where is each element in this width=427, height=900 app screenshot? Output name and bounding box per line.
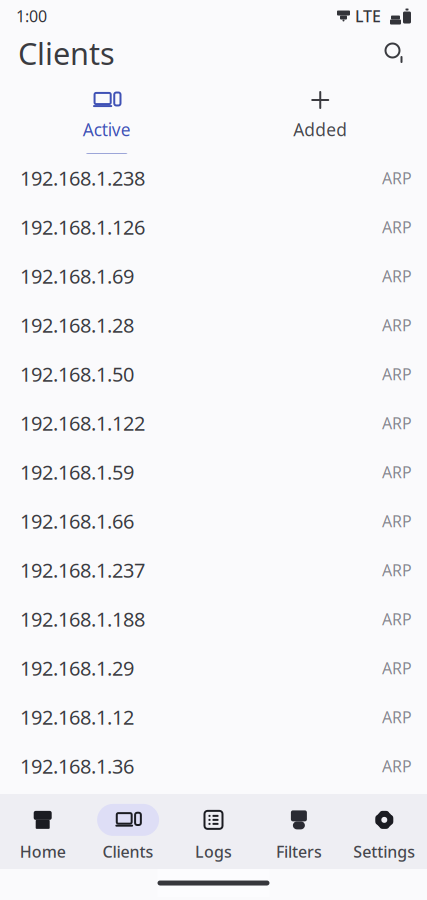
staticText: 192.168.1.59: [20, 459, 134, 485]
button[interactable]: Home: [0, 794, 85, 869]
staticText: 192.168.1.188: [20, 606, 145, 632]
staticText: ARP: [382, 167, 412, 189]
staticText: 192.168.1.50: [20, 361, 134, 387]
button[interactable]: 192.168.1.188: [0, 594, 427, 643]
staticText: LTE: [355, 5, 381, 27]
button[interactable]: 192.168.1.59: [0, 447, 427, 496]
staticText: 192.168.1.36: [20, 753, 134, 779]
staticText: ARP: [382, 461, 412, 483]
staticText: 1:00: [16, 5, 47, 27]
staticText: ARP: [382, 363, 412, 385]
staticText: Added: [293, 118, 347, 141]
button[interactable]: Active: [0, 77, 213, 157]
staticText: ARP: [382, 755, 412, 777]
button[interactable]: Search: [373, 31, 417, 75]
button[interactable]: 192.168.1.50: [0, 349, 427, 398]
staticText: Home: [20, 841, 66, 862]
staticText: 192.168.1.12: [20, 704, 134, 730]
button[interactable]: 192.168.1.69: [0, 251, 427, 300]
staticText: Settings: [353, 841, 415, 862]
button[interactable]: Settings: [342, 794, 427, 869]
staticText: Clients: [18, 33, 115, 73]
staticText: ARP: [382, 314, 412, 336]
staticText: 192.168.1.237: [20, 557, 145, 583]
button[interactable]: 192.168.1.29: [0, 643, 427, 692]
button[interactable]: Filters: [256, 794, 342, 869]
staticText: 192.168.1.69: [20, 263, 134, 289]
staticText: ARP: [382, 559, 412, 581]
staticText: 192.168.1.126: [20, 214, 145, 240]
staticText: ARP: [382, 706, 412, 728]
staticText: ARP: [382, 265, 412, 287]
button[interactable]: Added: [213, 77, 427, 157]
button[interactable]: 192.168.1.28: [0, 300, 427, 349]
staticText: 192.168.1.29: [20, 655, 134, 681]
button[interactable]: 192.168.1.12: [0, 692, 427, 741]
staticText: ARP: [382, 412, 412, 434]
button[interactable]: 192.168.1.122: [0, 398, 427, 447]
staticText: 192.168.1.28: [20, 312, 134, 338]
button[interactable]: 192.168.1.238: [0, 153, 427, 202]
staticText: 192.168.1.238: [20, 165, 145, 191]
button[interactable]: 192.168.1.66: [0, 496, 427, 545]
staticText: ARP: [382, 510, 412, 532]
staticText: Filters: [276, 841, 322, 862]
button[interactable]: Clients: [85, 794, 171, 869]
staticText: ARP: [382, 657, 412, 679]
staticText: ARP: [382, 608, 412, 630]
staticText: ARP: [382, 216, 412, 238]
staticText: Clients: [103, 841, 154, 862]
button[interactable]: 192.168.1.36: [0, 741, 427, 790]
staticText: 192.168.1.122: [20, 410, 145, 436]
button[interactable]: 192.168.1.237: [0, 545, 427, 594]
button[interactable]: Logs: [171, 794, 256, 869]
staticText: Logs: [195, 841, 232, 862]
staticText: 192.168.1.66: [20, 508, 134, 534]
button[interactable]: 192.168.1.126: [0, 202, 427, 251]
staticText: Active: [83, 118, 131, 141]
